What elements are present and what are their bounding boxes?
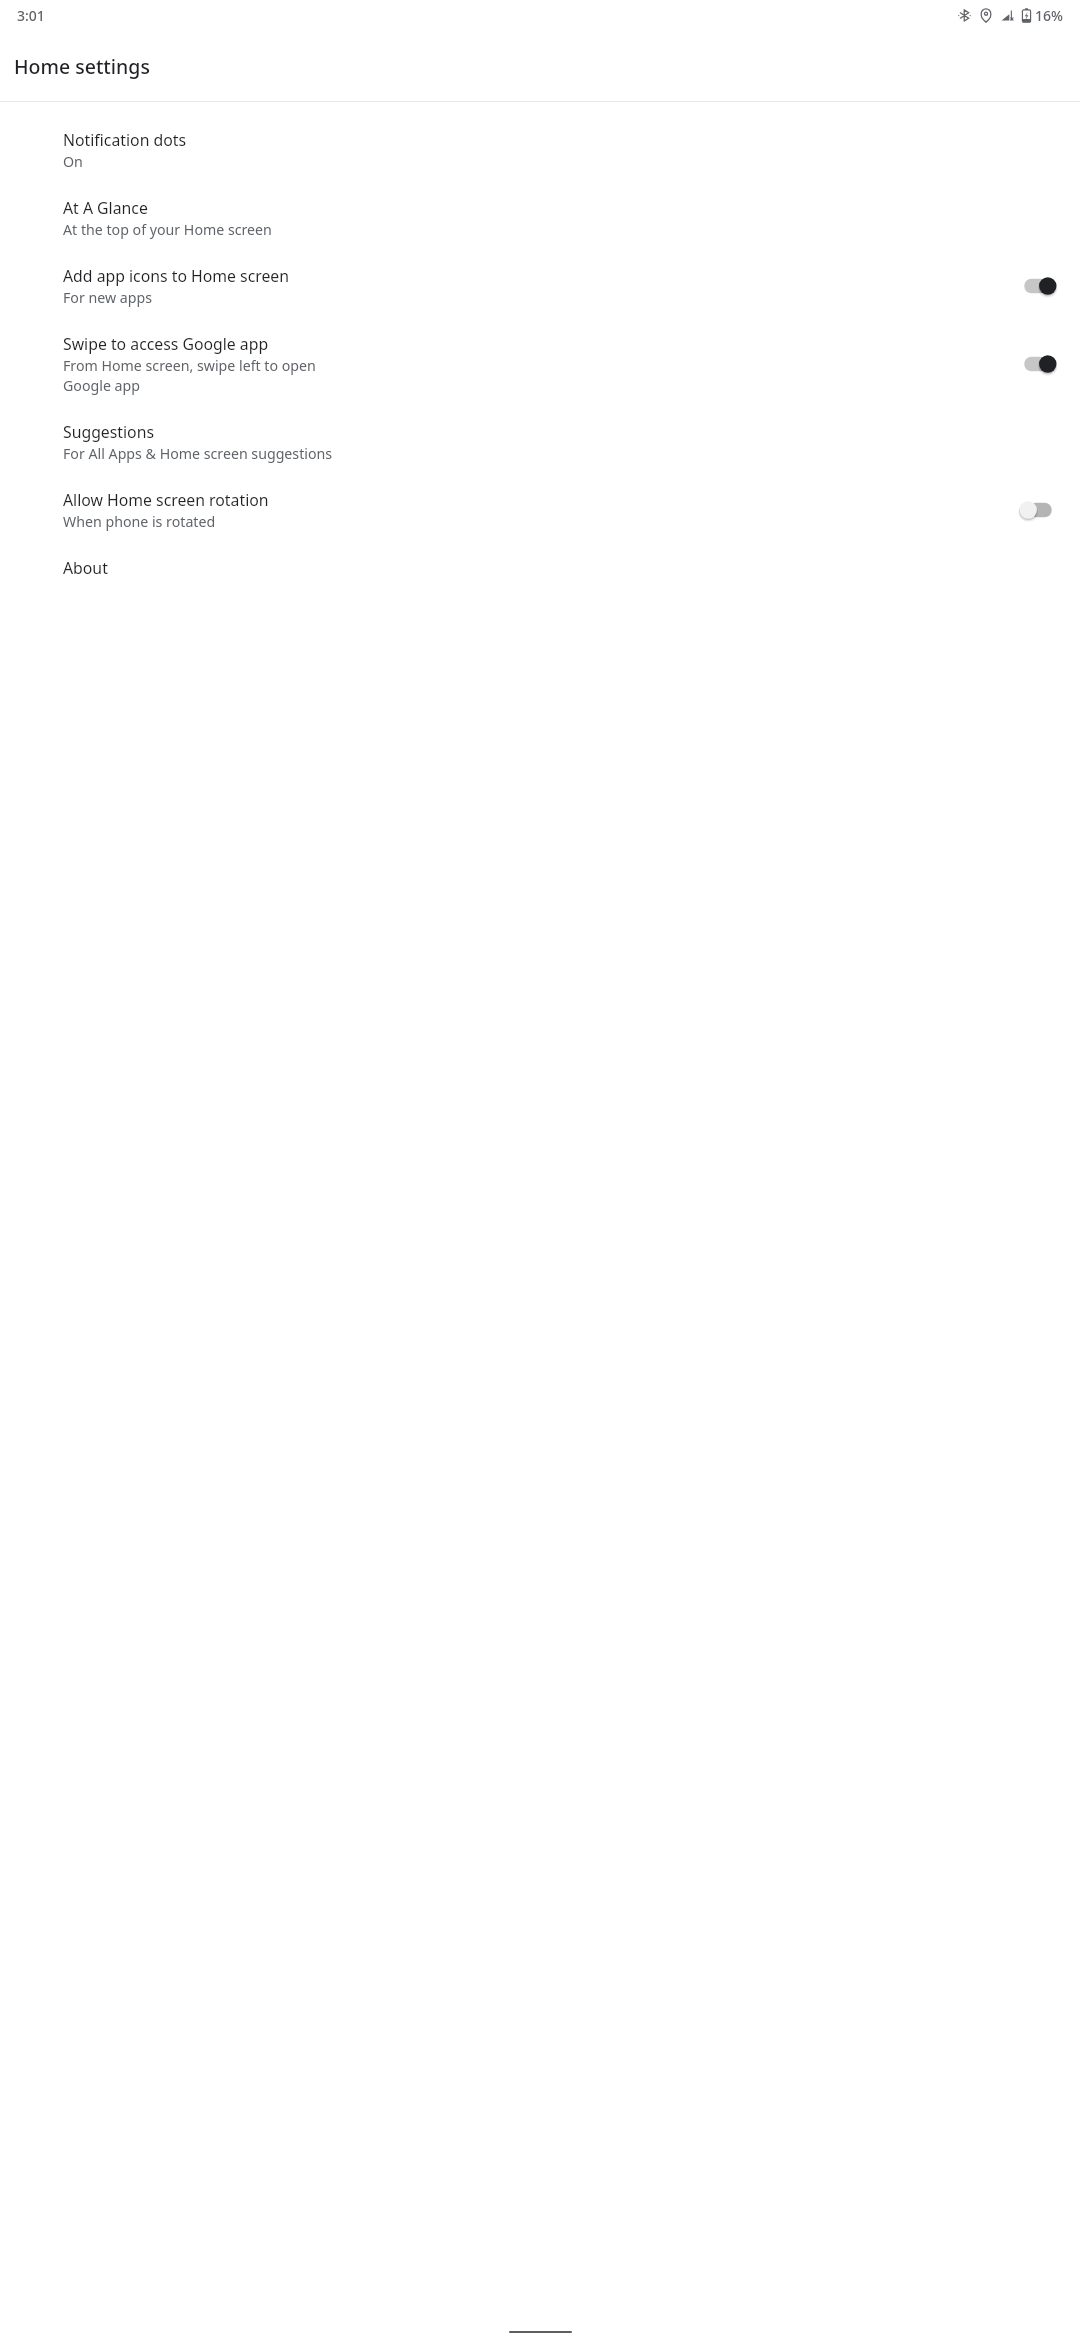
staticText: From Home screen, swipe left to open Goo… [63, 356, 316, 395]
staticText: On [63, 152, 83, 171]
staticText: Allow Home screen rotation [63, 489, 269, 511]
staticText: 3:01 [17, 6, 45, 25]
staticText: 16% [1035, 6, 1063, 25]
button[interactable]: Allow Home screen rotation [0, 476, 1080, 544]
button[interactable]: Toggle on [1016, 349, 1060, 379]
button[interactable]: At A Glance [0, 184, 1080, 252]
button[interactable]: Add app icons to Home screen [0, 252, 1080, 320]
staticText: Home settings [14, 53, 150, 80]
staticText: At the top of your Home screen [63, 220, 272, 239]
button[interactable]: Notification dots [0, 116, 1080, 184]
staticText: Add app icons to Home screen [63, 265, 290, 287]
staticText: For All Apps & Home screen suggestions [63, 444, 333, 463]
button[interactable]: Swipe to access Google app [0, 320, 1080, 408]
staticText: When phone is rotated [63, 512, 216, 531]
button[interactable]: Suggestions [0, 408, 1080, 476]
button[interactable]: Toggle off [1016, 495, 1060, 525]
staticText: About [63, 557, 108, 579]
button[interactable]: Toggle on [1016, 271, 1060, 301]
staticText: For new apps [63, 288, 153, 307]
staticText: Swipe to access Google app [63, 333, 269, 355]
staticText: Suggestions [63, 421, 155, 443]
staticText: At A Glance [63, 197, 148, 219]
staticText: Notification dots [63, 129, 187, 151]
button[interactable]: About [0, 544, 1080, 592]
